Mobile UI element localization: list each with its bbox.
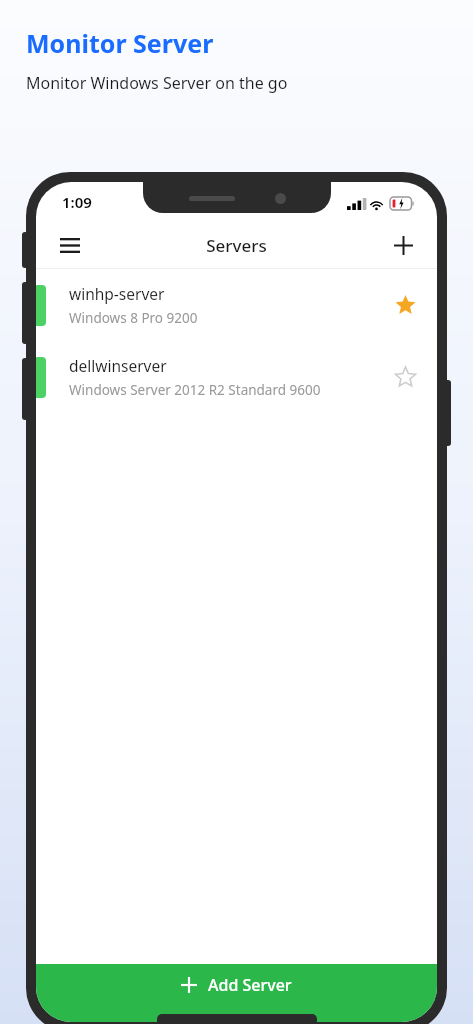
button[interactable]: Add Server: [36, 964, 437, 1022]
button[interactable]: Favorite: [385, 357, 425, 397]
staticText: Monitor Server: [26, 26, 214, 60]
button[interactable]: Unfavorite: [385, 285, 425, 325]
button[interactable]: Menu: [48, 223, 92, 267]
staticText: Windows Server 2012 R2 Standard 9600: [69, 381, 321, 399]
button[interactable]: Add: [381, 223, 425, 267]
staticText: winhp-server: [69, 283, 165, 304]
staticText: 1:09: [62, 192, 92, 212]
staticText: Monitor Windows Server on the go: [26, 72, 288, 94]
staticText: Servers: [206, 234, 267, 257]
staticText: Windows 8 Pro 9200: [69, 309, 198, 327]
staticText: Add Server: [208, 974, 292, 996]
button[interactable]: dellwinserver: [36, 341, 437, 413]
button[interactable]: winhp-server: [36, 269, 437, 341]
staticText: dellwinserver: [69, 355, 167, 376]
